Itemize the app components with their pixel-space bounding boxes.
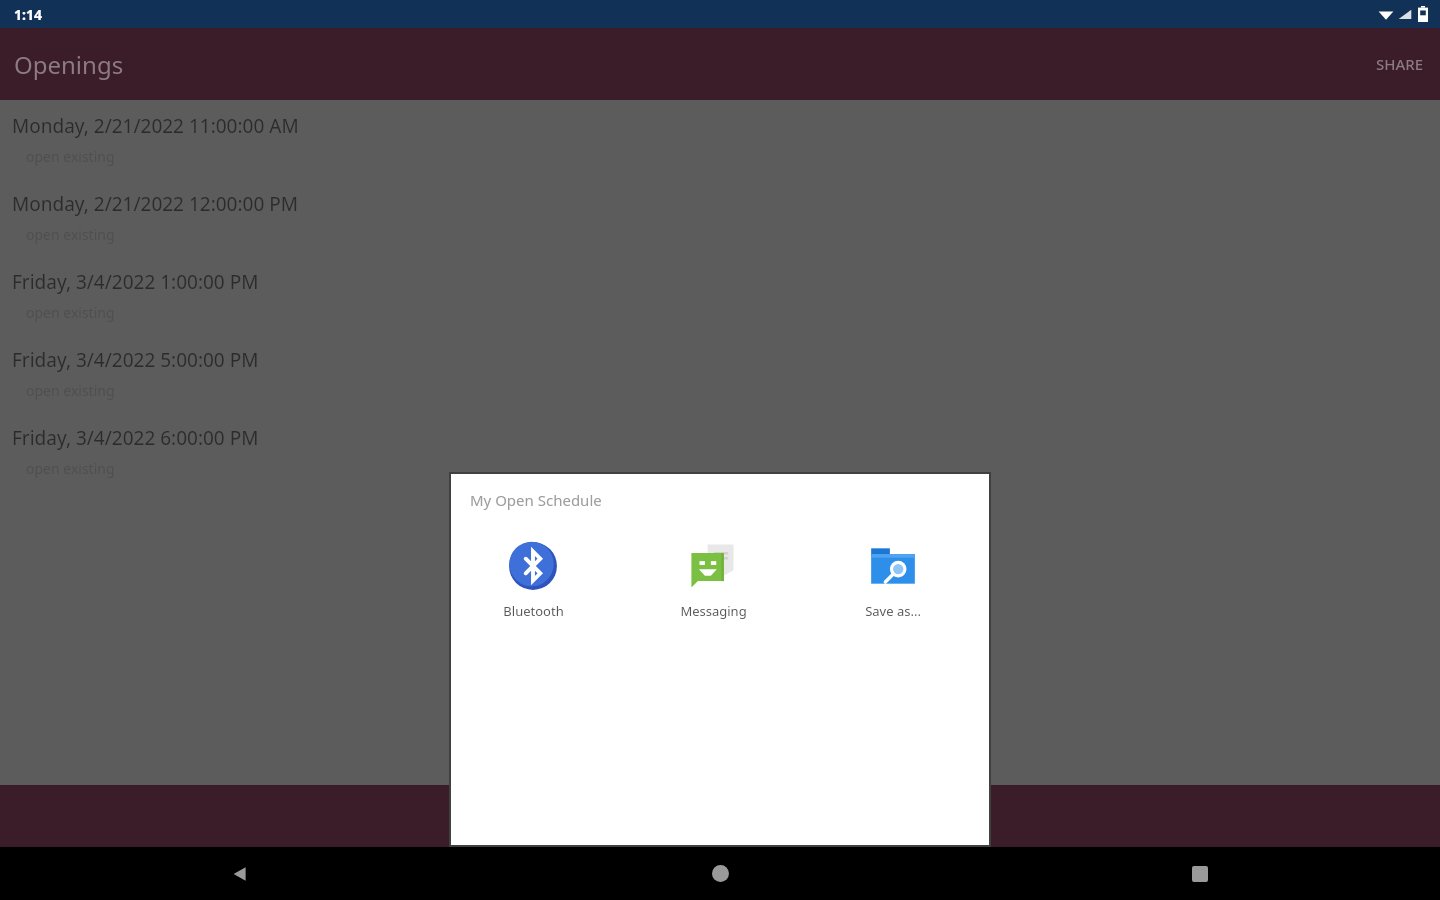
staticText: Friday, 3/4/2022 5:00:00 PM [12, 347, 259, 373]
staticText: Save as... [865, 602, 921, 620]
staticText: Friday, 3/4/2022 6:00:00 PM [12, 425, 259, 451]
staticText: 1:14 [14, 5, 42, 24]
staticText: Monday, 2/21/2022 12:00:00 PM [12, 191, 298, 217]
staticText: SHARE [1376, 54, 1424, 74]
button[interactable]: Monday, 2/21/2022 12:00:00 PM [0, 178, 1440, 256]
button[interactable]: Save as... [833, 533, 953, 624]
staticText: open existing [26, 303, 115, 322]
staticText: open existing [26, 381, 115, 400]
staticText: My Open Schedule [470, 490, 602, 510]
staticText: Friday, 3/4/2022 1:00:00 PM [12, 269, 259, 295]
button[interactable]: Messaging [653, 533, 773, 624]
staticText: open existing [26, 459, 115, 478]
staticText: Monday, 2/21/2022 11:00:00 AM [12, 113, 299, 139]
staticText: Messaging [680, 602, 747, 620]
staticText: Openings [14, 48, 124, 81]
button[interactable]: Back [0, 847, 480, 900]
button[interactable]: SHARE [1360, 40, 1440, 88]
button[interactable]: Monday, 2/21/2022 11:00:00 AM [0, 100, 1440, 178]
button[interactable]: Bluetooth [473, 533, 593, 624]
button[interactable]: Friday, 3/4/2022 1:00:00 PM [0, 256, 1440, 334]
button[interactable]: Friday, 3/4/2022 6:00:00 PM [0, 412, 1440, 490]
staticText: open existing [26, 147, 115, 166]
button[interactable]: Recents [960, 847, 1440, 900]
button[interactable]: Home [480, 847, 960, 900]
staticText: Bluetooth [503, 602, 564, 620]
staticText: open existing [26, 225, 115, 244]
button[interactable]: Friday, 3/4/2022 5:00:00 PM [0, 334, 1440, 412]
